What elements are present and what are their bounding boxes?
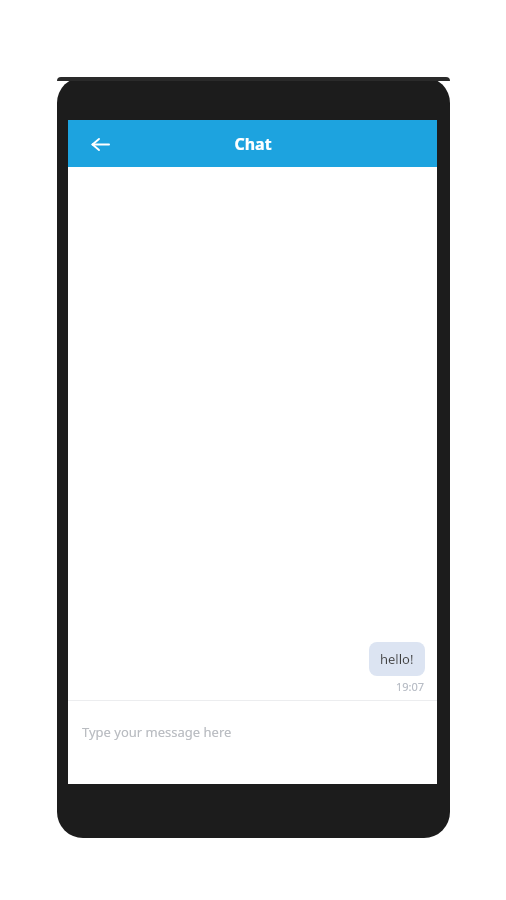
staticText: Type your message here xyxy=(82,723,232,741)
staticText: hello! xyxy=(380,650,414,668)
staticText: 19:07 xyxy=(396,679,425,694)
button[interactable]: Type your message here xyxy=(68,701,437,784)
button[interactable]: Back xyxy=(84,128,116,160)
staticText: Chat xyxy=(234,133,272,155)
button[interactable]: hello! xyxy=(369,642,425,676)
